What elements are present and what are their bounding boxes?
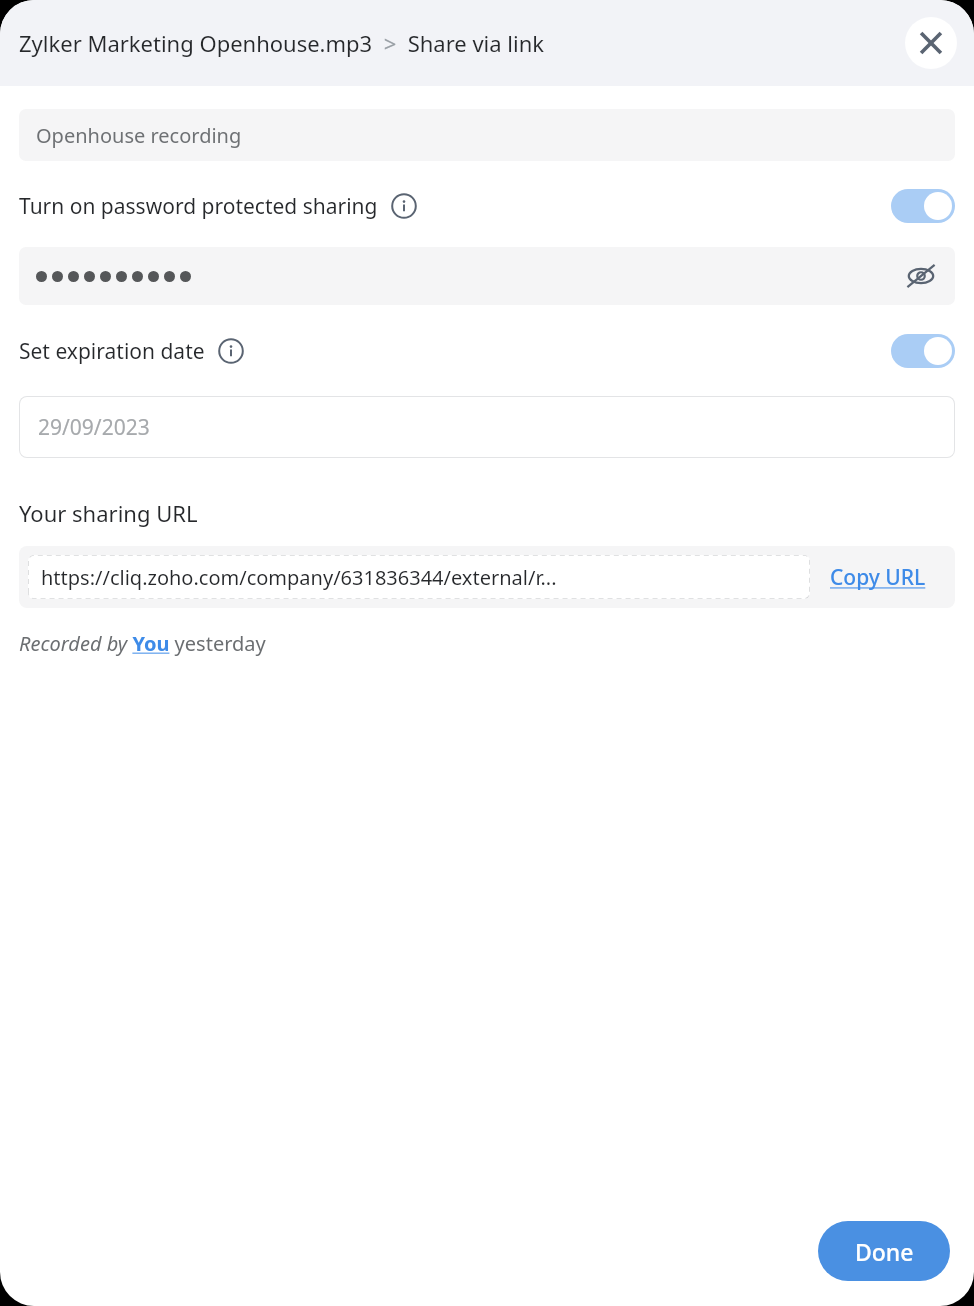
button[interactable]: Toggle (891, 334, 955, 368)
staticText: Set expiration date (19, 337, 205, 366)
button[interactable]: 29/09/2023 (19, 396, 955, 458)
staticText: Copy URL (830, 563, 926, 592)
button[interactable]: Openhouse recording (19, 109, 955, 161)
staticText: https://cliq.zoho.com/company/631836344/… (41, 564, 557, 591)
button[interactable]: Done (818, 1221, 950, 1281)
staticText: Your sharing URL (19, 498, 198, 528)
staticText: Openhouse recording (36, 122, 242, 149)
staticText: Done (855, 1236, 914, 1267)
button[interactable]: Close (905, 17, 957, 69)
button[interactable]: Toggle (891, 189, 955, 223)
button[interactable]: Turn on password protected sharing (19, 187, 955, 225)
staticText: 29/09/2023 (38, 413, 150, 442)
staticText: Recorded by You yesterday (19, 630, 266, 657)
button[interactable]: https://cliq.zoho.com/company/631836344/… (28, 555, 810, 599)
button[interactable]: Copy URL (810, 555, 946, 599)
button[interactable]: Show password (19, 247, 955, 305)
button[interactable]: Set expiration date (19, 332, 955, 370)
staticText: Zylker Marketing Openhouse.mp3 > Share v… (19, 28, 545, 58)
staticText: Turn on password protected sharing (19, 192, 378, 221)
button[interactable]: Show password (904, 259, 938, 293)
